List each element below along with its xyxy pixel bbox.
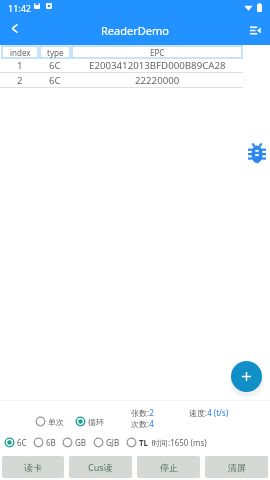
staticText: 6C	[49, 59, 61, 72]
button[interactable]: 清屏	[205, 456, 268, 478]
button[interactable]: 读卡	[2, 456, 64, 478]
button[interactable]: Debug	[244, 140, 270, 166]
button[interactable]: 循环	[75, 416, 104, 427]
staticText: 清屏	[228, 462, 246, 473]
staticText: ReaderDemo	[101, 23, 169, 38]
staticText: index	[10, 47, 31, 58]
staticText: 6C	[17, 437, 27, 448]
button[interactable]: 停止	[137, 456, 200, 478]
staticText: 次数:4	[131, 418, 154, 429]
button[interactable]: Cus读	[69, 456, 132, 478]
staticText: 6C	[49, 74, 61, 87]
button[interactable]: Menu	[241, 19, 270, 42]
staticText: Cus读	[88, 461, 113, 473]
staticText: EPC	[150, 47, 165, 58]
button[interactable]: 6C	[4, 437, 27, 448]
staticText: 11:42	[8, 2, 32, 14]
staticText: type	[47, 47, 64, 58]
button[interactable]: 6B	[33, 437, 56, 448]
button[interactable]: Back	[0, 17, 29, 40]
staticText: 单次	[48, 417, 64, 427]
button[interactable]: GB	[62, 437, 87, 448]
staticText: 循环	[88, 417, 104, 427]
button[interactable]: 单次	[35, 416, 64, 427]
button[interactable]: GJB	[93, 437, 120, 448]
staticText: E2003412013BFD000B89CA28	[89, 59, 226, 72]
staticText: 停止	[160, 462, 178, 473]
staticText: GB	[75, 437, 87, 448]
button[interactable]: Add	[231, 361, 262, 392]
staticText: 张数:2	[131, 407, 154, 418]
staticText: 时间:1650 (ms)	[152, 437, 207, 448]
staticText: 22220000	[135, 74, 180, 87]
staticText: GJB	[106, 437, 120, 448]
staticText: 读卡	[24, 462, 42, 473]
staticText: 2	[17, 74, 23, 87]
staticText: 1	[17, 59, 23, 72]
staticText: 6B	[46, 437, 56, 448]
button[interactable]: TL	[126, 437, 149, 448]
staticText: TL	[139, 437, 149, 448]
staticText: 速度:4 (t/s)	[189, 407, 229, 418]
